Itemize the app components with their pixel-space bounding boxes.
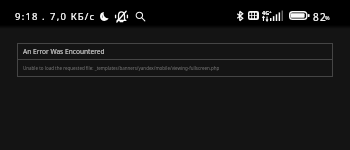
other: Mobile network — [248, 11, 259, 20]
staticText: 82 — [313, 10, 328, 24]
staticText: An Error Was Encountered — [23, 47, 105, 56]
other: Search — [135, 11, 146, 22]
staticText: 9:18 — [15, 10, 39, 23]
other: Notifications muted — [115, 11, 128, 22]
button[interactable]: An Error Was Encountered — [17, 43, 333, 77]
staticText: % — [325, 14, 330, 21]
staticText: 4G — [262, 9, 270, 17]
staticText: Unable to load the requested file: _temp… — [23, 65, 220, 71]
other: Do not disturb — [100, 12, 109, 21]
staticText: + — [269, 9, 272, 15]
other: Bluetooth — [237, 11, 243, 21]
staticText: 7,0 КБ/c — [50, 10, 96, 23]
staticText: . — [42, 10, 46, 23]
